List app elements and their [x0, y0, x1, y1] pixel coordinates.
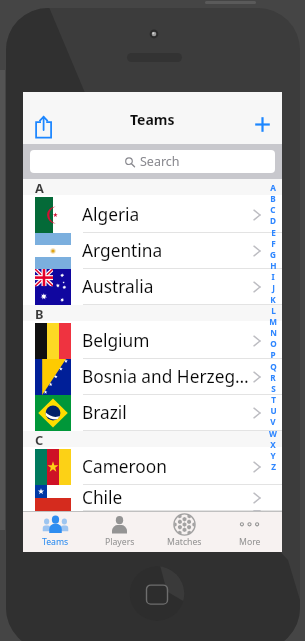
button[interactable]: Search [30, 150, 275, 173]
staticText: Players [105, 536, 135, 548]
button[interactable]: Australia [23, 269, 282, 305]
staticText: Teams [130, 110, 175, 129]
staticText: Australia [82, 275, 252, 299]
staticText: V [270, 416, 276, 427]
staticText: I [271, 271, 275, 282]
staticText: Search [140, 153, 180, 170]
button[interactable]: Add [248, 109, 276, 140]
button[interactable]: Teams [23, 512, 87, 552]
button[interactable]: More [217, 512, 282, 552]
staticText: Belgium [82, 329, 252, 353]
staticText: M [269, 316, 277, 327]
staticText: Cameroon [82, 455, 252, 479]
staticText: H [270, 260, 277, 271]
staticText: Chile [82, 486, 252, 510]
staticText: Teams [42, 536, 69, 548]
staticText: T [271, 394, 276, 405]
staticText: S [271, 383, 276, 394]
staticText: Algeria [82, 203, 252, 227]
button[interactable]: Players [87, 512, 152, 552]
button[interactable]: Cameroon [23, 449, 282, 485]
staticText: D [270, 215, 276, 226]
staticText: Q [270, 361, 277, 372]
staticText: E [271, 227, 276, 238]
button[interactable]: Chile [23, 485, 282, 511]
staticText: L [271, 305, 276, 316]
staticText: A [270, 182, 276, 193]
staticText: C [270, 204, 276, 215]
staticText: O [270, 338, 277, 349]
staticText: C [35, 431, 44, 447]
button[interactable]: Brazil [23, 395, 282, 431]
staticText: G [270, 249, 276, 260]
staticText: U [270, 405, 277, 416]
button[interactable]: Algeria [23, 197, 282, 233]
staticText: B [35, 305, 44, 321]
staticText: More [239, 536, 261, 548]
button[interactable]: Matches [152, 512, 217, 552]
staticText: W [269, 428, 277, 439]
staticText: K [270, 294, 276, 305]
button[interactable]: Belgium [23, 323, 282, 359]
staticText: Bosnia and Herzeg… [82, 365, 252, 389]
button[interactable]: Argentina [23, 233, 282, 269]
button[interactable]: Share [28, 110, 56, 140]
staticText: Argentina [82, 239, 252, 263]
button[interactable]: Bosnia and Herzeg… [23, 359, 282, 395]
staticText: F [271, 238, 276, 249]
staticText: A [35, 179, 44, 195]
staticText: X [270, 439, 276, 450]
staticText: B [270, 193, 276, 204]
staticText: J [272, 282, 275, 293]
button[interactable]: Section index [266, 182, 280, 472]
staticText: N [270, 327, 277, 338]
staticText: Y [270, 450, 276, 461]
staticText: Z [271, 461, 276, 472]
staticText: Brazil [82, 401, 252, 425]
staticText: Matches [167, 536, 202, 548]
staticText: R [270, 372, 276, 383]
staticText: P [270, 349, 276, 360]
